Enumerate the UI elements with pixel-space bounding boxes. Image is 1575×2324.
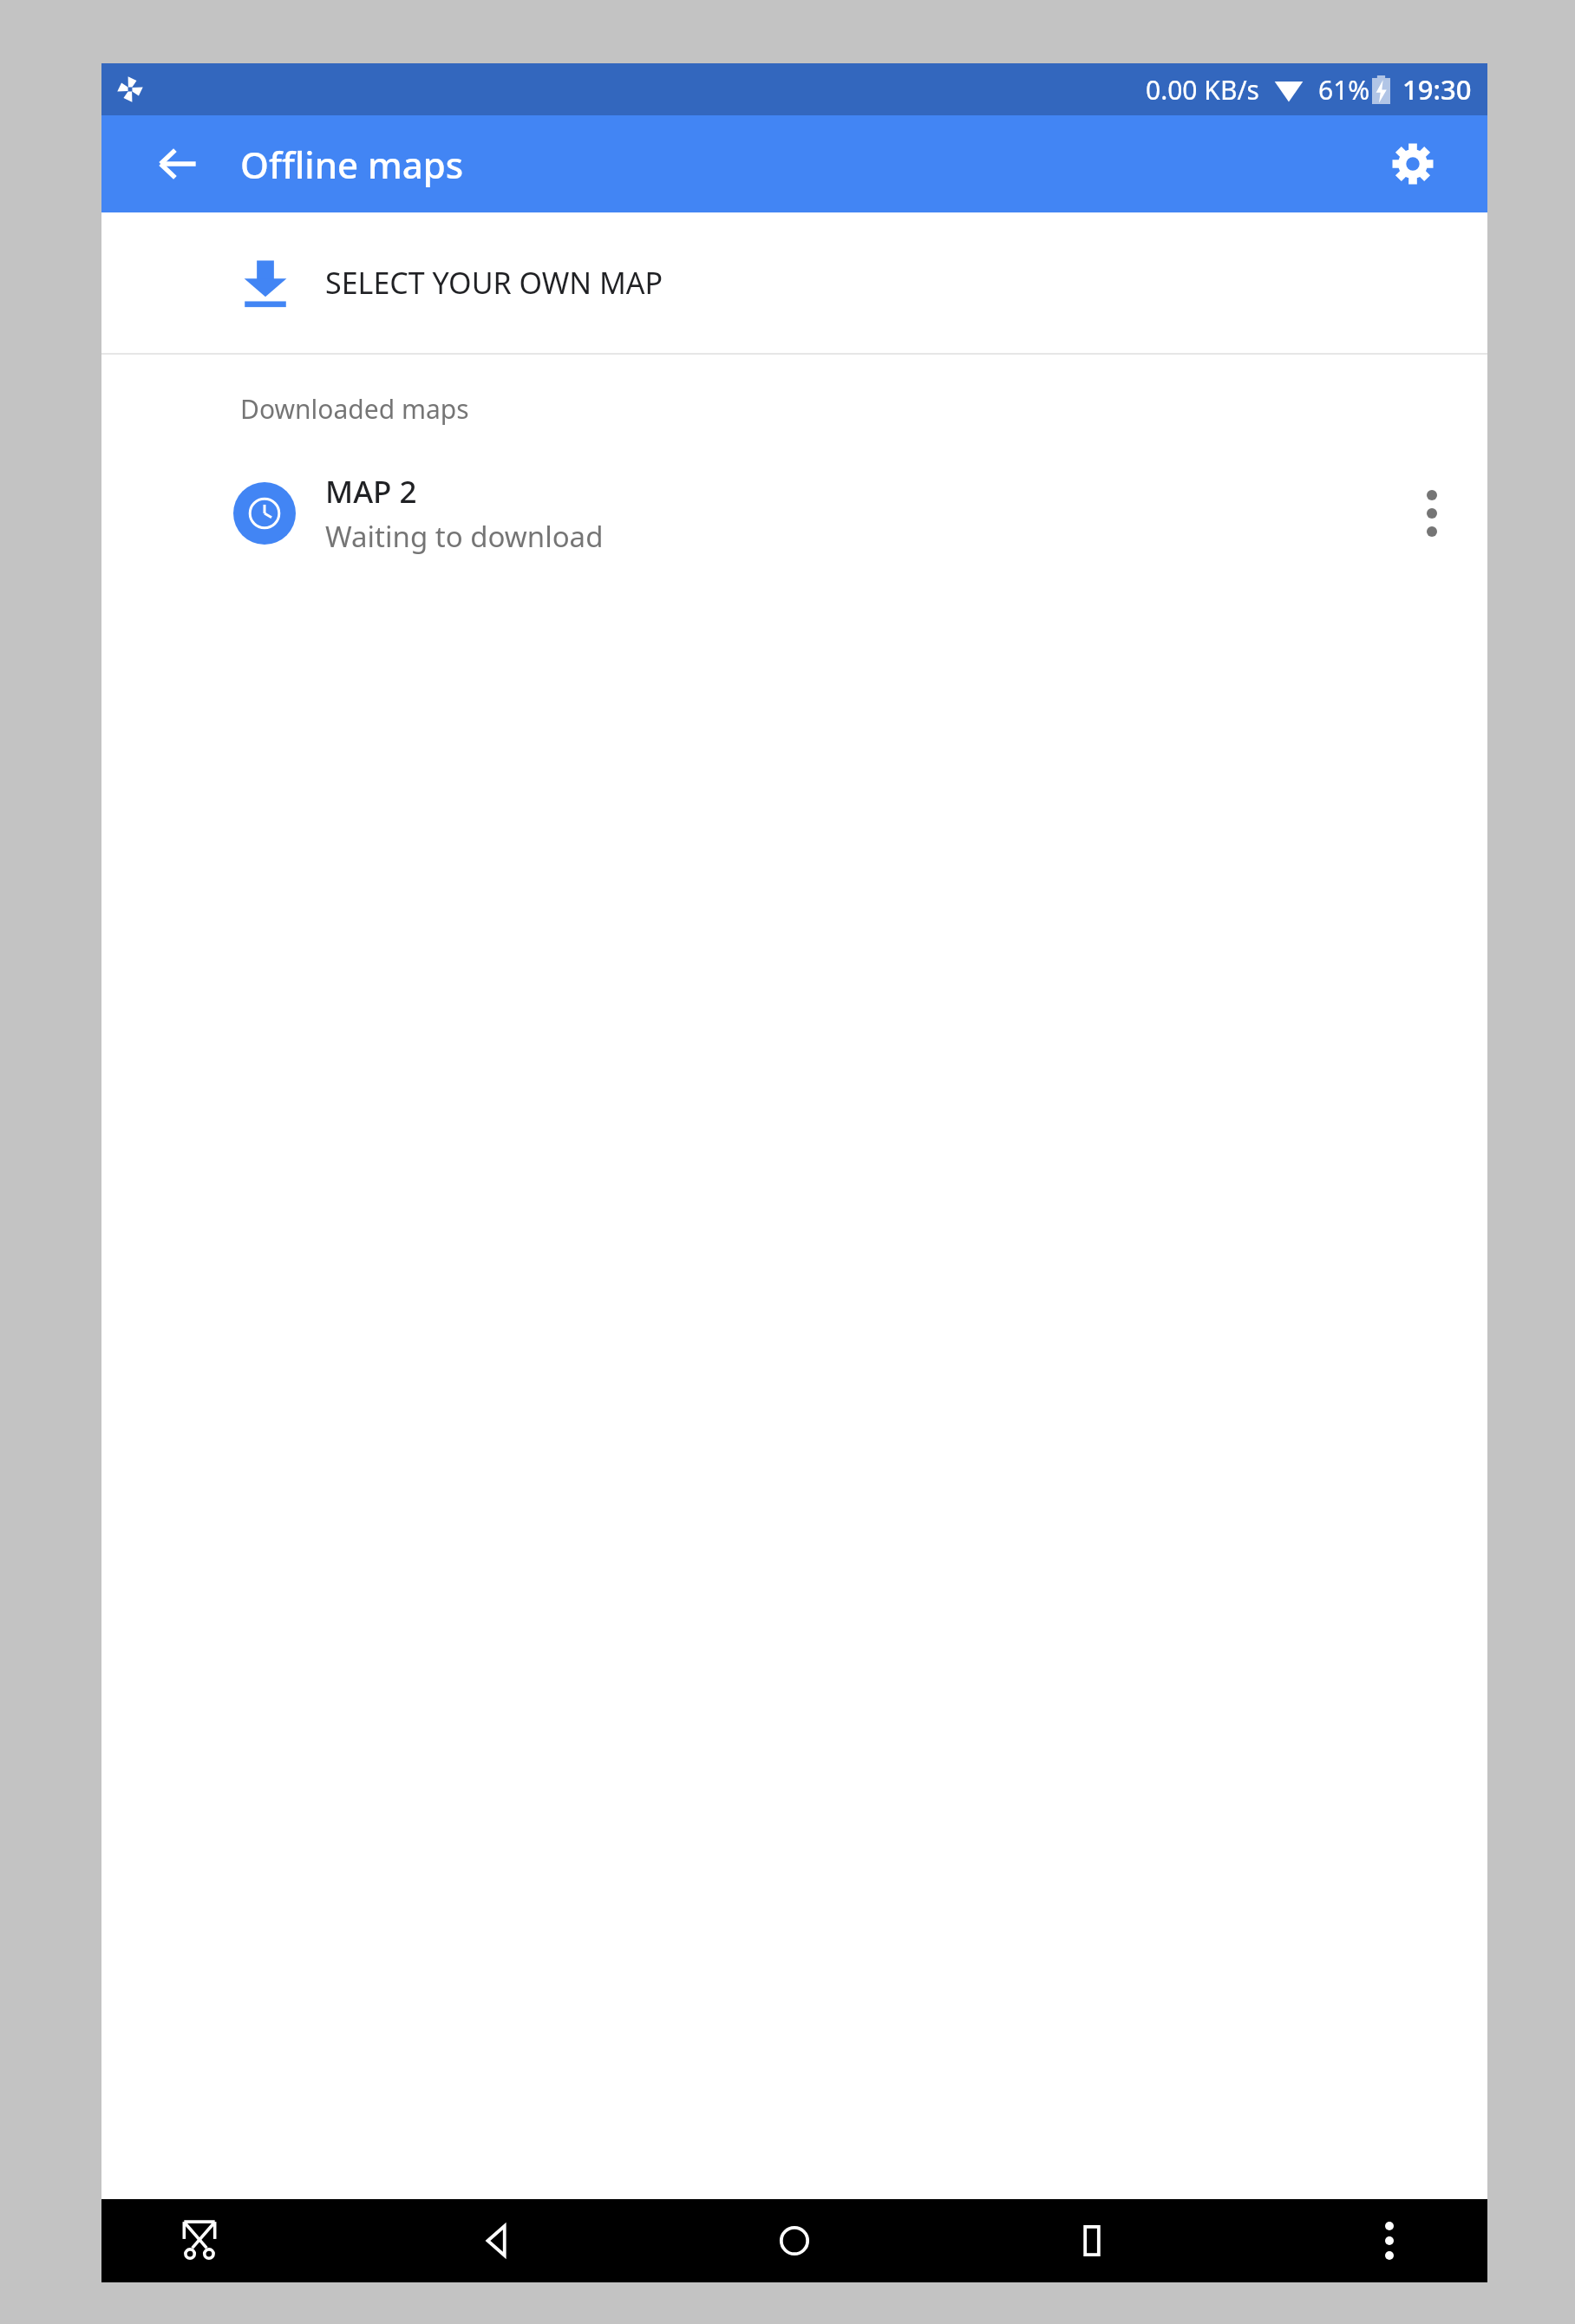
button[interactable]: Settings [1371,122,1454,206]
button[interactable]: Screenshot [126,2199,273,2282]
staticText: Downloaded maps [240,391,469,427]
button[interactable]: Recents [1018,2199,1166,2282]
staticText: 0.00 KB/s [1146,72,1259,108]
button[interactable]: Home [721,2199,868,2282]
button[interactable]: Back [423,2199,571,2282]
staticText: Offline maps [240,140,464,189]
button[interactable]: More options [1394,475,1470,552]
button[interactable]: More [1316,2199,1463,2282]
staticText: 61% [1318,72,1370,108]
button[interactable]: SELECT YOUR OWN MAP [101,212,1487,353]
staticText: MAP 2 [325,471,417,512]
staticText: 19:30 [1402,71,1472,108]
button[interactable]: Back [136,122,219,206]
staticText: Waiting to download [325,517,604,556]
button[interactable]: MAP 2 [101,458,1487,569]
staticText: SELECT YOUR OWN MAP [325,263,663,303]
